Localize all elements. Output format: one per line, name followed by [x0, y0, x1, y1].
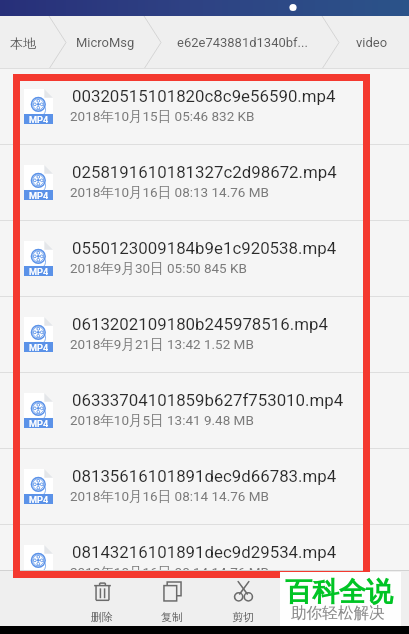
staticText: video [356, 35, 388, 50]
staticText: 复制 [161, 610, 183, 624]
button[interactable]: MP4 [0, 221, 409, 296]
staticText: 2018年10月16日 08:13 14.76 MB [70, 184, 269, 201]
staticText: 06333704101859b627f753010.mp4 [72, 390, 372, 410]
staticText: 0258191610181327c2d98672.mp4 [72, 162, 372, 182]
staticText: 0613202109180b245978516.mp4 [72, 314, 372, 334]
button[interactable]: Delete [68, 570, 136, 626]
staticText: 08135616101891dec9d66783.mp4 [72, 466, 372, 486]
staticText: 2018年10月15日 05:46 832 KB [70, 108, 255, 125]
button[interactable]: MP4 [0, 69, 409, 144]
button[interactable]: MP4 [0, 449, 409, 524]
button[interactable]: MicroMsg [76, 16, 144, 69]
button[interactable]: Cut [209, 570, 277, 626]
staticText: MP4 [29, 114, 49, 125]
staticText: 0550123009184b9e1c920538.mp4 [72, 238, 372, 258]
staticText: 删除 [91, 610, 113, 624]
button[interactable]: MP4 [0, 373, 409, 448]
staticText: 助你轻松解决 [291, 603, 385, 623]
staticText: 本地 [10, 35, 36, 51]
staticText: MicroMsg [76, 35, 135, 50]
staticText: MP4 [29, 342, 49, 353]
staticText: MP4 [29, 494, 49, 505]
button[interactable]: MP4 [0, 297, 409, 372]
button[interactable]: MP4 [0, 525, 409, 570]
button[interactable]: Copy [138, 570, 206, 626]
button[interactable]: e62e743881d1340bf... [177, 16, 322, 69]
staticText: MP4 [29, 418, 49, 429]
button[interactable]: MP4 [0, 145, 409, 220]
button[interactable]: video [356, 16, 401, 69]
staticText: MP4 [29, 190, 49, 201]
button[interactable]: 本地 [10, 16, 46, 69]
staticText: MP4 [29, 266, 49, 277]
staticText: 剪切 [232, 610, 254, 624]
staticText: 08143216101891dec9d29534.mp4 [72, 542, 372, 562]
staticText: 百科全说 [285, 575, 393, 609]
staticText: 2018年9月30日 05:50 845 KB [70, 260, 247, 277]
staticText: 2018年9月21日 13:42 1.52 MB [70, 336, 254, 353]
staticText: 2018年10月5日 13:41 9.48 MB [70, 412, 254, 429]
staticText: 2018年10月16日 08:14 14.76 MB [70, 564, 269, 570]
staticText: 00320515101820c8c9e56590.mp4 [72, 86, 372, 106]
staticText: 2018年10月16日 08:14 14.76 MB [70, 488, 269, 505]
staticText: e62e743881d1340bf... [177, 35, 308, 50]
